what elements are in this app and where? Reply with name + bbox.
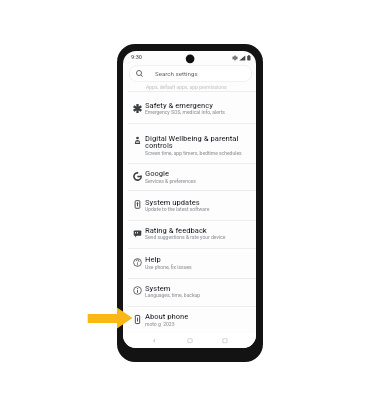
button[interactable]: Home — [183, 333, 197, 348]
staticText: System updates — [145, 198, 200, 207]
staticText: Rating & feedback — [145, 226, 207, 235]
staticText: Update to the latest software — [145, 206, 210, 212]
staticText: Safety & emergency — [145, 101, 213, 110]
button[interactable]: Back — [147, 333, 161, 348]
button[interactable]: System — [123, 278, 256, 306]
button[interactable]: Digital Wellbeing & parental — [123, 123, 256, 163]
staticText: Send suggestions & rate your device — [145, 234, 226, 240]
button[interactable]: Rating & feedback — [123, 220, 256, 248]
staticText: Use phone, fix issues — [145, 264, 192, 270]
staticText: Search settings — [155, 70, 198, 77]
button[interactable]: Recent apps — [218, 333, 232, 348]
staticText: 9:30 — [131, 54, 143, 61]
staticText: Services & preferences — [145, 178, 196, 184]
button[interactable]: Google — [123, 163, 256, 190]
staticText: Screen time, app timers, bedtime schedul… — [145, 150, 242, 156]
staticText: Apps, default apps, app permissions — [146, 84, 227, 90]
button[interactable]: Help — [123, 248, 256, 278]
button[interactable]: Search settings — [129, 65, 252, 82]
staticText: Languages, time, backup — [145, 292, 201, 298]
staticText: Digital Wellbeing & parental — [145, 134, 239, 143]
staticText: Google — [145, 169, 170, 178]
button[interactable]: Safety & emergency — [123, 91, 256, 123]
button[interactable]: System updates — [123, 190, 256, 220]
staticText: controls — [145, 141, 173, 150]
staticText: Emergency SOS, medical info, alerts — [145, 109, 225, 115]
staticText: System — [145, 284, 171, 293]
button[interactable]: About phone — [123, 306, 256, 333]
staticText: About phone — [145, 312, 189, 321]
staticText: Help — [145, 255, 161, 264]
staticText: moto g 2023 — [145, 321, 175, 327]
